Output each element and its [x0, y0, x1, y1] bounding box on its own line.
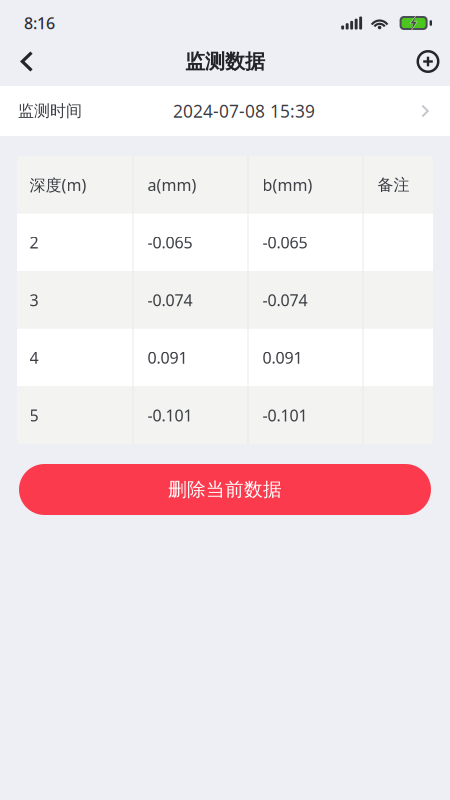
staticText: -0.074 [147, 289, 192, 311]
staticText: 监测时间 [18, 101, 82, 121]
staticText: 8:16 [24, 12, 55, 34]
staticText: 0.091 [147, 347, 187, 368]
staticText: 3 [29, 289, 38, 311]
staticText: -0.101 [262, 405, 307, 426]
staticText: 2024-07-08 15:39 [173, 99, 315, 122]
button[interactable]: 删除当前数据 [19, 464, 431, 515]
button[interactable]: 监测时间 [0, 86, 450, 136]
staticText: 删除当前数据 [168, 478, 282, 501]
staticText: 0.091 [262, 347, 302, 368]
button[interactable]: Back [4, 37, 50, 85]
staticText: 5 [29, 405, 38, 426]
staticText: -0.065 [262, 232, 307, 253]
staticText: b(mm) [262, 174, 312, 195]
button[interactable]: Add [406, 37, 450, 85]
staticText: a(mm) [147, 174, 196, 195]
staticText: 2 [29, 232, 38, 253]
staticText: 深度(m) [29, 174, 86, 195]
staticText: 4 [29, 347, 38, 368]
staticText: -0.101 [147, 405, 192, 426]
staticText: 备注 [377, 175, 409, 195]
staticText: -0.065 [147, 232, 192, 253]
staticText: 监测数据 [185, 49, 265, 74]
staticText: -0.074 [262, 289, 307, 311]
